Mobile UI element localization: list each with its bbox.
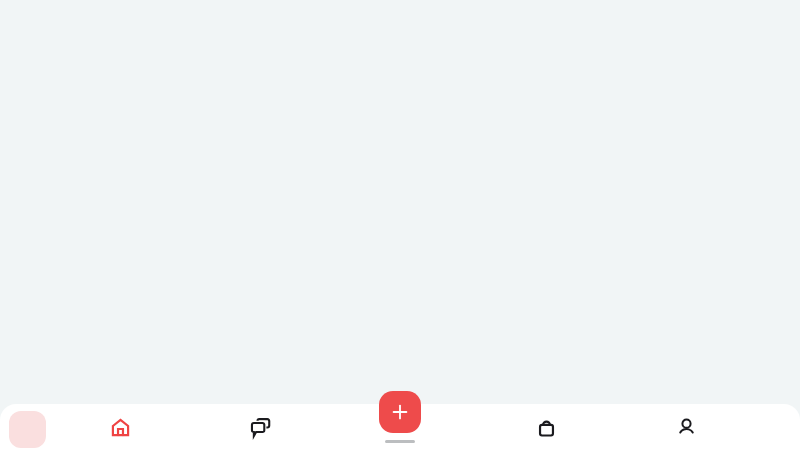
button[interactable]: Shop — [476, 404, 616, 450]
button[interactable]: Add — [379, 391, 421, 433]
button[interactable]: Profile — [616, 404, 756, 450]
button[interactable]: Home — [56, 404, 184, 450]
button[interactable] — [9, 411, 46, 448]
button[interactable]: Messages — [184, 404, 336, 450]
